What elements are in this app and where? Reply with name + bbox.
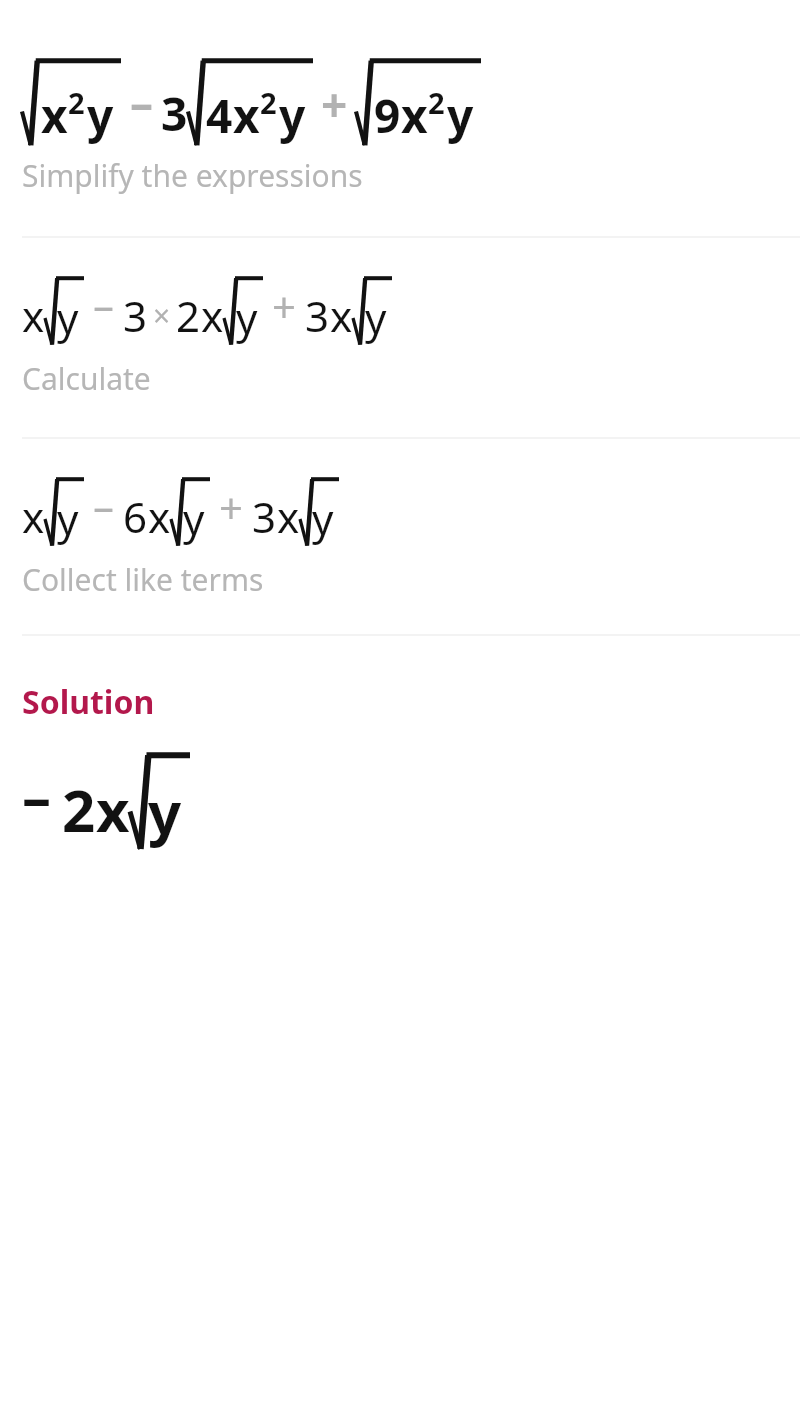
staticText: y [57,289,79,346]
staticText: x [201,287,224,344]
staticText: 3 [305,287,330,344]
staticText: x [330,287,353,344]
button[interactable]: Solution [0,636,800,851]
staticText: x [41,84,68,147]
staticText: 6 [123,488,148,545]
staticText: x [277,488,300,545]
staticText: × [153,295,171,336]
button[interactable]: x [0,58,800,236]
staticText: x [22,287,45,344]
staticText: + [272,278,297,335]
staticText: y [312,490,334,547]
staticText: x [148,488,171,545]
staticText: y [87,84,114,147]
staticText: x [401,84,428,147]
staticText: – [93,276,115,333]
staticText: 3 [161,82,188,145]
staticText: y [57,490,79,547]
staticText: – [22,756,52,835]
staticText: 2 [260,83,277,122]
staticText: 2 [176,287,201,344]
staticText: y [183,490,205,547]
staticText: 4 [206,84,233,147]
staticText: x [233,84,260,147]
staticText: y [365,289,387,346]
button[interactable]: x [0,439,800,634]
staticText: – [130,71,153,134]
staticText: – [93,477,115,534]
staticText: + [321,73,348,136]
staticText: 2 [68,83,85,122]
staticText: + [219,479,244,536]
staticText: 2 [428,83,445,122]
staticText: Solution [22,680,155,724]
staticText: Calculate [22,358,151,399]
staticText: y [148,772,182,851]
staticText: 3 [252,488,277,545]
staticText: y [236,289,258,346]
staticText: x [22,488,45,545]
staticText: y [447,84,474,147]
staticText: Collect like terms [22,559,264,600]
staticText: x [96,770,130,849]
staticText: Simplify the expressions [22,155,363,196]
staticText: 9 [374,84,401,147]
button[interactable]: x [0,238,800,437]
staticText: y [279,84,306,147]
staticText: 2 [62,770,96,849]
staticText: 3 [123,287,148,344]
